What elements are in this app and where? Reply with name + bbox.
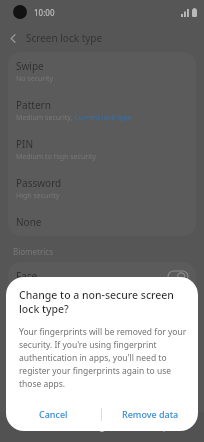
staticText: Cancel	[39, 408, 68, 420]
button[interactable]: Navigate up	[0, 25, 26, 51]
button[interactable]: Face	[8, 262, 196, 290]
button[interactable]: None	[8, 208, 196, 236]
button[interactable]: Password	[8, 169, 196, 208]
staticText: No security	[16, 74, 54, 84]
button[interactable]: Back	[145, 412, 179, 442]
staticText: Remove data	[122, 408, 179, 420]
staticText: PIN	[16, 137, 34, 151]
staticText: Medium security, Current lock type	[16, 113, 132, 123]
button[interactable]: PIN	[8, 130, 196, 169]
staticText: Medium to high security	[16, 152, 97, 162]
button[interactable]: Remove data	[102, 401, 198, 427]
staticText: Change to a non-secure screen lock type?	[19, 288, 180, 316]
staticText: Screen lock type	[26, 31, 103, 45]
button[interactable]: Pattern	[8, 91, 196, 130]
staticText: High security	[16, 191, 60, 201]
staticText: Face	[16, 269, 38, 283]
staticText: Password	[16, 176, 62, 190]
button[interactable]: Swipe	[8, 52, 196, 91]
staticText: Biometrics	[13, 246, 54, 257]
button[interactable]: Cancel	[6, 401, 101, 427]
staticText: Your fingerprints will be removed for yo…	[19, 326, 187, 390]
button[interactable]: Home	[85, 412, 119, 442]
staticText: 10:00	[34, 7, 55, 18]
button[interactable]: Recents	[26, 412, 60, 442]
staticText: None	[16, 215, 42, 229]
staticText: Swipe	[16, 59, 44, 73]
staticText: Pattern	[16, 98, 51, 112]
